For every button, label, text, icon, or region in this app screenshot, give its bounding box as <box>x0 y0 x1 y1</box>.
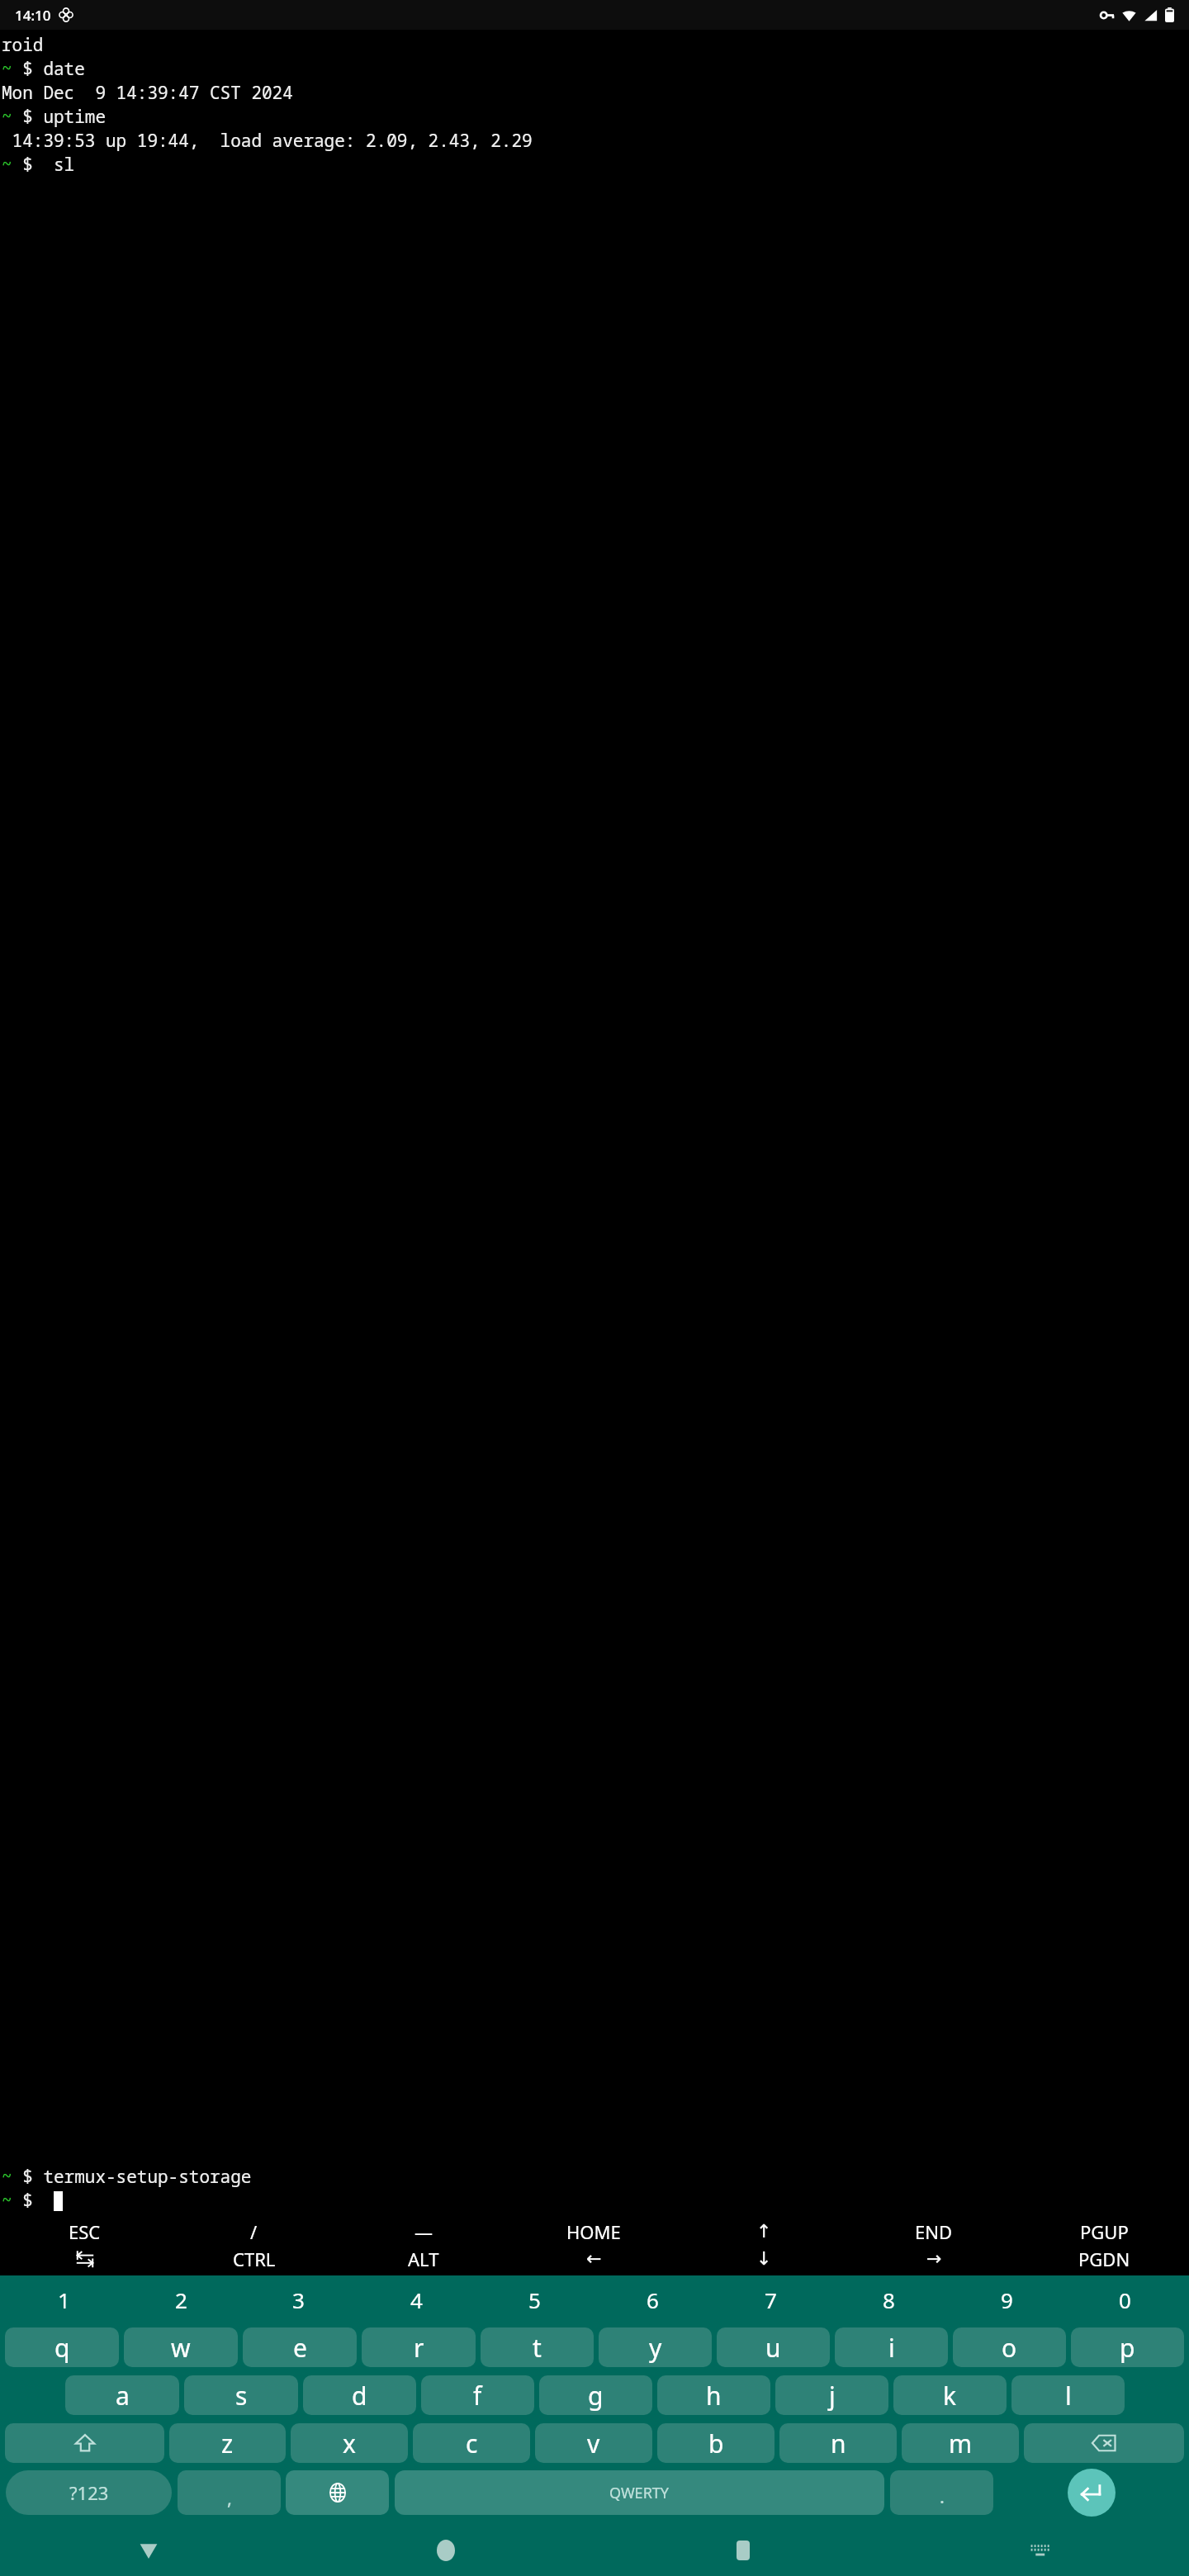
staticText: v <box>587 2427 600 2460</box>
button[interactable]: Backspace <box>1024 2423 1184 2463</box>
button[interactable]: l <box>1011 2375 1125 2415</box>
staticText: — <box>414 2219 433 2244</box>
button[interactable]: y <box>599 2327 712 2367</box>
button[interactable]: d <box>303 2375 416 2415</box>
button[interactable]: PGUP <box>1019 2218 1189 2245</box>
button[interactable]: Tab <box>0 2245 169 2272</box>
staticText: x <box>343 2427 356 2460</box>
button[interactable]: k <box>893 2375 1007 2415</box>
button[interactable]: Hide keyboard <box>892 2525 1189 2576</box>
staticText: ESC <box>69 2219 101 2244</box>
button[interactable]: 5 <box>476 2275 594 2323</box>
button[interactable]: Change language <box>286 2470 389 2515</box>
staticText: ← <box>586 2248 602 2270</box>
button[interactable]: 0 <box>1066 2275 1184 2323</box>
button[interactable]: , <box>178 2470 281 2515</box>
button[interactable]: Recents <box>594 2525 892 2576</box>
staticText: roid <box>2 33 44 57</box>
button[interactable]: 3 <box>239 2275 358 2323</box>
button[interactable]: x <box>291 2423 408 2463</box>
staticText: ~ $ termux-setup-storage <box>2 2165 252 2189</box>
button[interactable]: ← <box>509 2245 679 2272</box>
staticText: ~ $ date <box>2 57 85 81</box>
button[interactable]: q <box>5 2327 119 2367</box>
button[interactable]: Shift <box>5 2423 164 2463</box>
button[interactable]: f <box>421 2375 534 2415</box>
staticText: f <box>473 2379 482 2413</box>
button[interactable]: v <box>535 2423 652 2463</box>
staticText: PGDN <box>1078 2247 1130 2271</box>
button[interactable]: ESC <box>0 2218 169 2245</box>
staticText: c <box>466 2427 478 2460</box>
staticText: . <box>940 2484 945 2508</box>
button[interactable]: h <box>657 2375 770 2415</box>
button[interactable]: QWERTY <box>395 2470 884 2515</box>
staticText: y <box>649 2331 662 2365</box>
staticText: CTRL <box>233 2247 276 2271</box>
button[interactable]: u <box>717 2327 830 2367</box>
staticText: w <box>171 2331 191 2365</box>
button[interactable]: 8 <box>830 2275 948 2323</box>
button[interactable]: Home <box>297 2525 594 2576</box>
staticText: 2 <box>175 2285 187 2314</box>
staticText: k <box>943 2379 957 2413</box>
staticText: , <box>227 2485 232 2510</box>
staticText: z <box>221 2427 234 2460</box>
staticText: b <box>708 2427 724 2460</box>
button[interactable]: 7 <box>712 2275 830 2323</box>
staticText: / <box>250 2219 258 2244</box>
button[interactable]: n <box>779 2423 897 2463</box>
button[interactable]: Enter <box>1068 2469 1116 2517</box>
staticText: ~ $ uptime <box>2 105 106 129</box>
button[interactable]: s <box>184 2375 298 2415</box>
staticText: j <box>829 2379 836 2413</box>
button[interactable]: 6 <box>594 2275 712 2323</box>
button[interactable]: a <box>65 2375 179 2415</box>
button[interactable]: j <box>775 2375 888 2415</box>
staticText: ↑ <box>756 2221 772 2242</box>
staticText: 0 <box>1119 2285 1131 2314</box>
button[interactable]: m <box>902 2423 1019 2463</box>
staticText: ~ $ <box>2 2189 54 2213</box>
staticText: h <box>706 2379 722 2413</box>
button[interactable]: ?123 <box>6 2470 172 2515</box>
staticText: 14:10 <box>15 6 51 25</box>
button[interactable]: END <box>849 2218 1019 2245</box>
button[interactable]: g <box>539 2375 652 2415</box>
button[interactable]: ↓ <box>679 2245 849 2272</box>
button[interactable]: 2 <box>122 2275 239 2323</box>
staticText: p <box>1120 2331 1135 2365</box>
button[interactable]: / <box>169 2218 339 2245</box>
button[interactable]: p <box>1071 2327 1184 2367</box>
staticText: PGUP <box>1080 2219 1129 2244</box>
staticText: l <box>1065 2379 1072 2413</box>
button[interactable]: . <box>890 2470 993 2515</box>
staticText: 6 <box>647 2285 659 2314</box>
button[interactable]: PGDN <box>1019 2245 1189 2272</box>
button[interactable]: e <box>243 2327 357 2367</box>
button[interactable]: z <box>169 2423 286 2463</box>
staticText: t <box>533 2331 542 2365</box>
button[interactable]: w <box>124 2327 238 2367</box>
button[interactable]: Back <box>0 2525 297 2576</box>
button[interactable]: b <box>657 2423 775 2463</box>
staticText: n <box>831 2427 846 2460</box>
button[interactable]: 4 <box>358 2275 476 2323</box>
button[interactable]: o <box>953 2327 1066 2367</box>
staticText: → <box>926 2248 942 2270</box>
button[interactable]: i <box>835 2327 948 2367</box>
button[interactable]: t <box>481 2327 594 2367</box>
button[interactable]: — <box>339 2218 509 2245</box>
button[interactable]: → <box>849 2245 1019 2272</box>
button[interactable]: ALT <box>339 2245 509 2272</box>
button[interactable]: c <box>413 2423 530 2463</box>
staticText: ?123 <box>69 2480 109 2505</box>
button[interactable]: 9 <box>948 2275 1066 2323</box>
button[interactable]: r <box>362 2327 476 2367</box>
button[interactable]: 1 <box>5 2275 122 2323</box>
staticText: ~ $ sl <box>2 153 75 177</box>
staticText: a <box>116 2379 130 2413</box>
button[interactable]: ↑ <box>679 2218 849 2245</box>
button[interactable]: HOME <box>509 2218 679 2245</box>
button[interactable]: CTRL <box>169 2245 339 2272</box>
